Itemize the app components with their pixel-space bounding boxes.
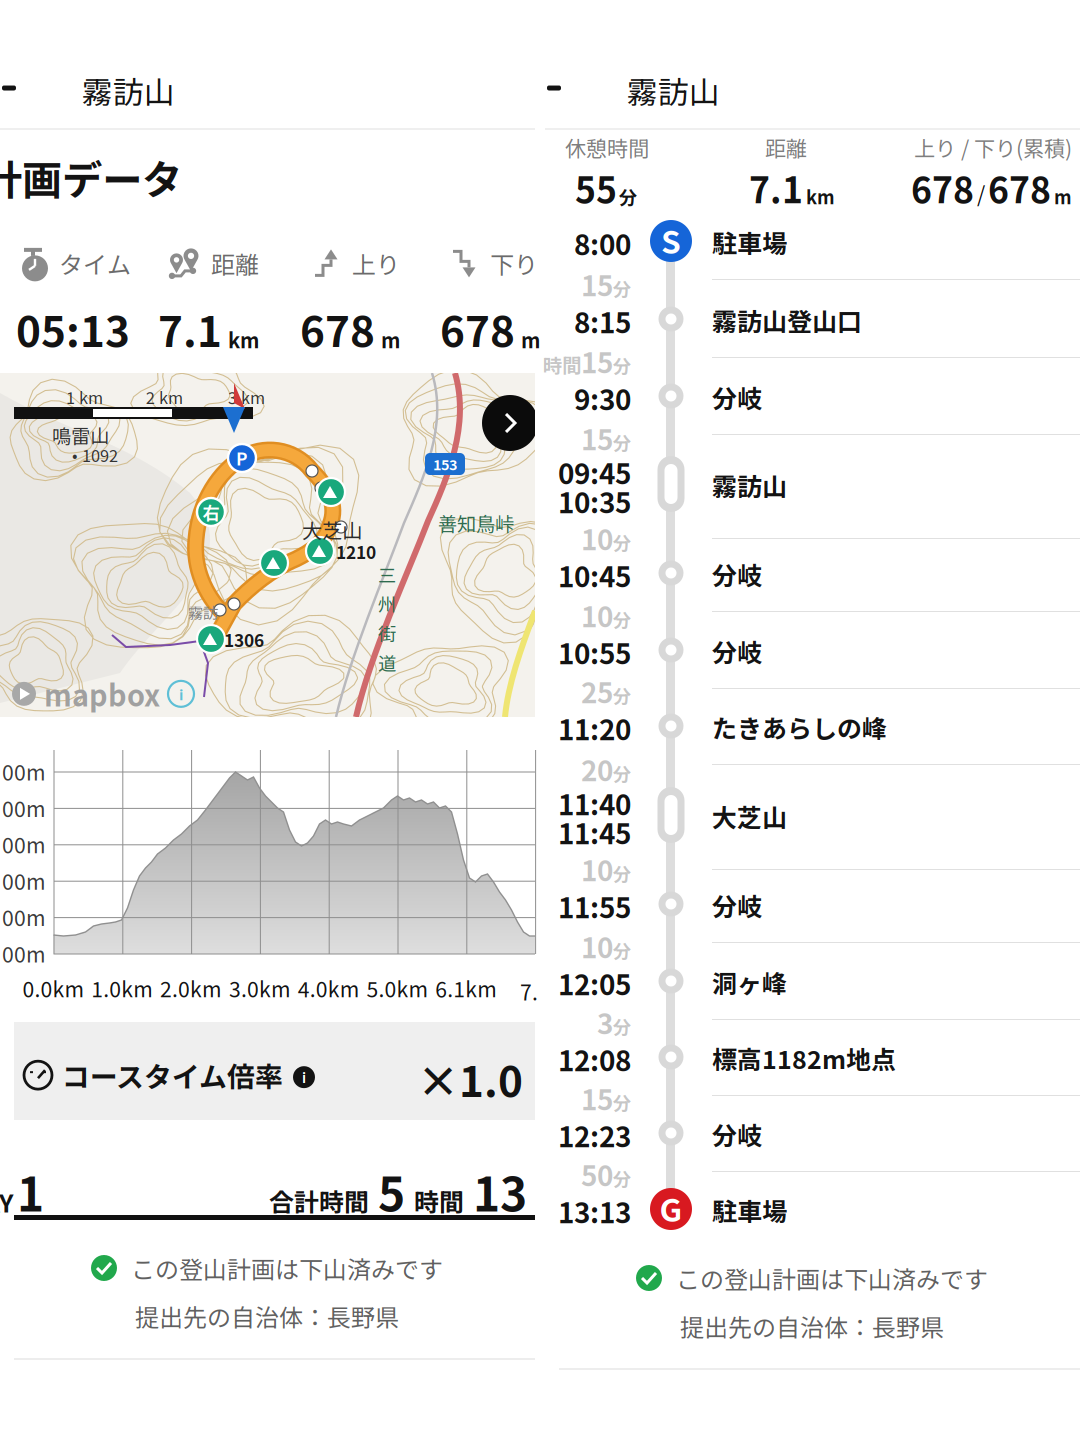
staticText: i: [179, 683, 183, 704]
staticText: i: [302, 1067, 306, 1087]
staticText: 10:45: [558, 555, 631, 595]
staticText: 05:13: [16, 298, 130, 359]
staticText: AY: [0, 1184, 13, 1220]
staticText: コースタイム倍率: [62, 1055, 283, 1095]
staticText: 駐車場: [712, 1192, 787, 1228]
staticText: 7.1: [158, 298, 222, 359]
staticText: 霧訪山登山口: [712, 302, 862, 338]
staticText: 00m: [2, 938, 46, 969]
staticText: 提出先の自治体：長野県: [135, 1299, 399, 1333]
staticText: 20: [581, 749, 613, 789]
staticText: 合計時間: [269, 1183, 369, 1219]
staticText: 上り: [352, 246, 400, 281]
staticText: 5.0km: [366, 973, 428, 1003]
staticText: 3 km: [228, 385, 265, 409]
staticText: 10:35: [558, 481, 631, 521]
staticText: 分岐: [712, 556, 762, 592]
staticText: 678: [988, 162, 1051, 213]
staticText: 10: [581, 849, 613, 889]
staticText: 霧訪山: [82, 68, 175, 112]
staticText: 0.0km: [22, 973, 84, 1003]
staticText: 鳴雷山: [52, 421, 109, 449]
staticText: 分: [613, 429, 631, 455]
staticText: 10:55: [558, 632, 631, 672]
staticText: 分岐: [712, 887, 762, 923]
staticText: 10: [581, 595, 613, 635]
staticText: 00m: [2, 829, 46, 859]
staticText: km: [806, 183, 835, 209]
staticText: 駐車場: [712, 224, 787, 260]
staticText: 洞ヶ峰: [712, 964, 787, 1000]
staticText: 道: [378, 649, 396, 676]
staticText: 時間: [543, 350, 581, 378]
button[interactable]: Back: [547, 64, 591, 112]
staticText: 標高1182m地点: [712, 1040, 896, 1076]
staticText: 5: [378, 1158, 405, 1225]
staticText: 678: [440, 298, 515, 359]
staticText: 分: [613, 937, 631, 963]
staticText: 3.0km: [229, 973, 291, 1003]
button[interactable]: Back: [2, 64, 46, 112]
staticText: 霧訪山: [712, 467, 787, 503]
staticText: ×1.0: [417, 1048, 523, 1109]
staticText: 分: [613, 682, 631, 708]
staticText: 12:08: [558, 1039, 631, 1079]
staticText: この登山計画は下山済みです: [131, 1251, 443, 1285]
staticText: 11:40: [558, 783, 631, 823]
staticText: 15: [581, 341, 613, 381]
staticText: 大芝山: [712, 798, 787, 834]
staticText: 三: [378, 561, 396, 587]
staticText: 8:00: [574, 223, 631, 263]
staticText: 00m: [2, 902, 46, 932]
staticText: タイム: [59, 246, 131, 281]
staticText: 分岐: [712, 633, 762, 669]
staticText: 09:45: [558, 452, 631, 492]
staticText: 分岐: [712, 1116, 762, 1152]
staticText: 州: [378, 590, 396, 617]
staticText: 右: [202, 499, 219, 524]
staticText: 13: [473, 1158, 527, 1225]
staticText: 1: [17, 1158, 44, 1225]
staticText: 11:45: [558, 812, 631, 852]
staticText: 10: [581, 518, 613, 558]
staticText: 25: [581, 671, 613, 711]
staticText: 2 km: [146, 385, 183, 409]
staticText: mapbox: [44, 673, 160, 715]
staticText: m: [1054, 183, 1072, 209]
staticText: 50: [581, 1154, 613, 1194]
staticText: 12:05: [558, 963, 631, 1003]
staticText: 距離: [211, 246, 259, 281]
staticText: 6.1km: [435, 973, 497, 1003]
staticText: 3: [597, 1002, 613, 1042]
staticText: 下り: [490, 246, 538, 281]
staticText: 678: [911, 162, 974, 213]
staticText: 分: [613, 606, 631, 632]
staticText: 00m: [2, 792, 46, 823]
staticText: 分: [613, 352, 631, 378]
staticText: 大芝山: [302, 515, 362, 544]
staticText: 提出先の自治体：長野県: [680, 1309, 944, 1343]
staticText: 分: [613, 860, 631, 886]
staticText: 4.0km: [298, 973, 360, 1003]
staticText: 善知鳥峠: [438, 509, 514, 537]
staticText: 上り / 下り(累積): [914, 132, 1072, 163]
staticText: 霧訪: [188, 601, 218, 623]
staticText: 13:13: [558, 1191, 631, 1231]
staticText: 分岐: [712, 379, 762, 415]
staticText: 153: [433, 454, 457, 474]
staticText: 休憩時間: [565, 132, 649, 163]
staticText: 55: [575, 162, 617, 213]
staticText: 15: [581, 418, 613, 458]
staticText: 8:15: [574, 301, 631, 341]
staticText: 分: [613, 1089, 631, 1115]
staticText: 2.0km: [160, 973, 222, 1003]
staticText: 1306: [224, 627, 264, 652]
staticText: 分: [613, 529, 631, 555]
staticText: 計画データ: [0, 148, 182, 206]
button[interactable]: Open full map: [482, 395, 538, 451]
staticText: 00m: [2, 756, 46, 787]
staticText: 分: [613, 275, 631, 301]
staticText: 分: [619, 183, 637, 209]
staticText: 15: [581, 264, 613, 304]
staticText: 霧訪山: [627, 68, 720, 112]
